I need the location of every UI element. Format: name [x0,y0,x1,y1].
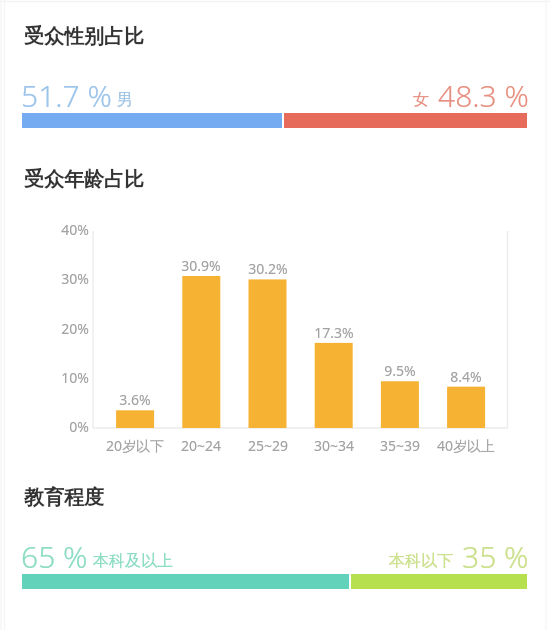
staticText: 30~34 [294,436,374,455]
staticText: 40岁以上 [426,436,506,455]
staticText: 0% [49,417,89,436]
staticText: 9.5% [366,361,434,380]
staticText: 男 [117,90,133,110]
staticText: 35 % [462,536,529,577]
staticText: 65 % [21,536,88,577]
staticText: 30% [49,269,89,288]
staticText: 女 [413,90,429,110]
staticText: 25~29 [228,436,308,455]
staticText: 8.4% [432,367,500,386]
button[interactable]: 65 % [21,536,173,577]
staticText: 17.3% [300,323,368,342]
staticText: 51.7 % [21,75,112,116]
button[interactable] [22,574,527,589]
staticText: 受众性别占比 [24,24,144,49]
staticText: 48.3 % [438,75,529,116]
button[interactable]: 本科以下 [389,536,529,577]
staticText: 20~24 [161,436,241,455]
staticText: 40% [49,220,89,239]
button[interactable] [22,113,527,128]
staticText: 受众年龄占比 [24,167,144,192]
staticText: 30.2% [234,259,302,278]
staticText: 20% [49,319,89,338]
staticText: 35~39 [360,436,440,455]
staticText: 20岁以下 [95,436,175,455]
staticText: 10% [49,368,89,387]
staticText: 本科及以上 [93,551,173,571]
button[interactable]: 女 [413,75,529,116]
staticText: 3.6% [101,390,169,409]
staticText: 30.9% [167,256,235,275]
button[interactable]: 51.7 % [21,75,133,116]
other: Audience age distribution chart [0,0,550,630]
staticText: 教育程度 [24,485,104,510]
staticText: 本科以下 [389,551,453,571]
